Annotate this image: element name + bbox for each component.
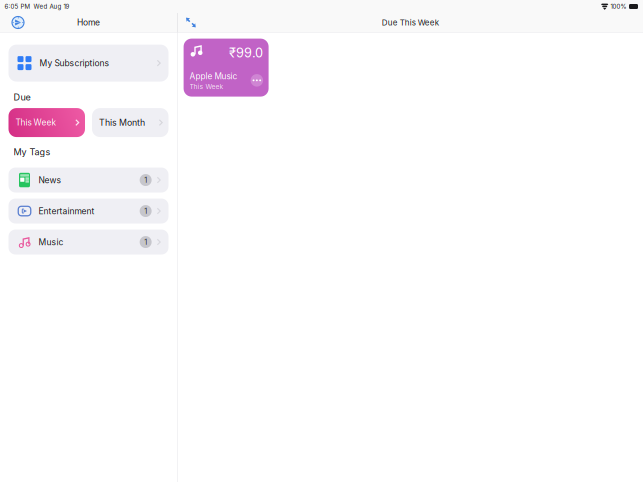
button[interactable]: My Subscriptions	[8, 45, 168, 82]
staticText: 1	[144, 237, 147, 246]
staticText: This Week	[15, 118, 56, 128]
staticText: 1	[144, 206, 147, 215]
staticText: Entertainment	[38, 206, 94, 216]
staticText: Home	[77, 17, 100, 28]
staticText: News	[38, 175, 61, 185]
staticText: My Tags	[13, 147, 50, 158]
button[interactable]: ₹99.0	[184, 39, 269, 97]
staticText: This Month	[99, 117, 145, 128]
button[interactable]: This Week	[8, 108, 85, 137]
staticText: Due This Week	[382, 18, 439, 27]
staticText: Music	[38, 237, 63, 247]
staticText: My Subscriptions	[39, 58, 109, 68]
staticText: ₹99.0	[229, 45, 263, 61]
staticText: 6:05 PM	[4, 3, 30, 10]
staticText: 1	[144, 175, 147, 184]
button[interactable]: This Month	[92, 108, 168, 137]
button[interactable]: Music	[8, 229, 168, 254]
staticText: Wed Aug 19	[33, 3, 69, 10]
button[interactable]: Discover	[0, 13, 29, 31]
button[interactable]: News	[8, 167, 168, 192]
staticText: Due	[13, 92, 30, 103]
button[interactable]: Entertainment	[8, 198, 168, 223]
staticText: Apple Music	[190, 71, 238, 81]
staticText: This Week	[190, 82, 224, 91]
staticText: 100%	[610, 3, 626, 10]
button[interactable]: Expand sidebar	[178, 14, 201, 31]
